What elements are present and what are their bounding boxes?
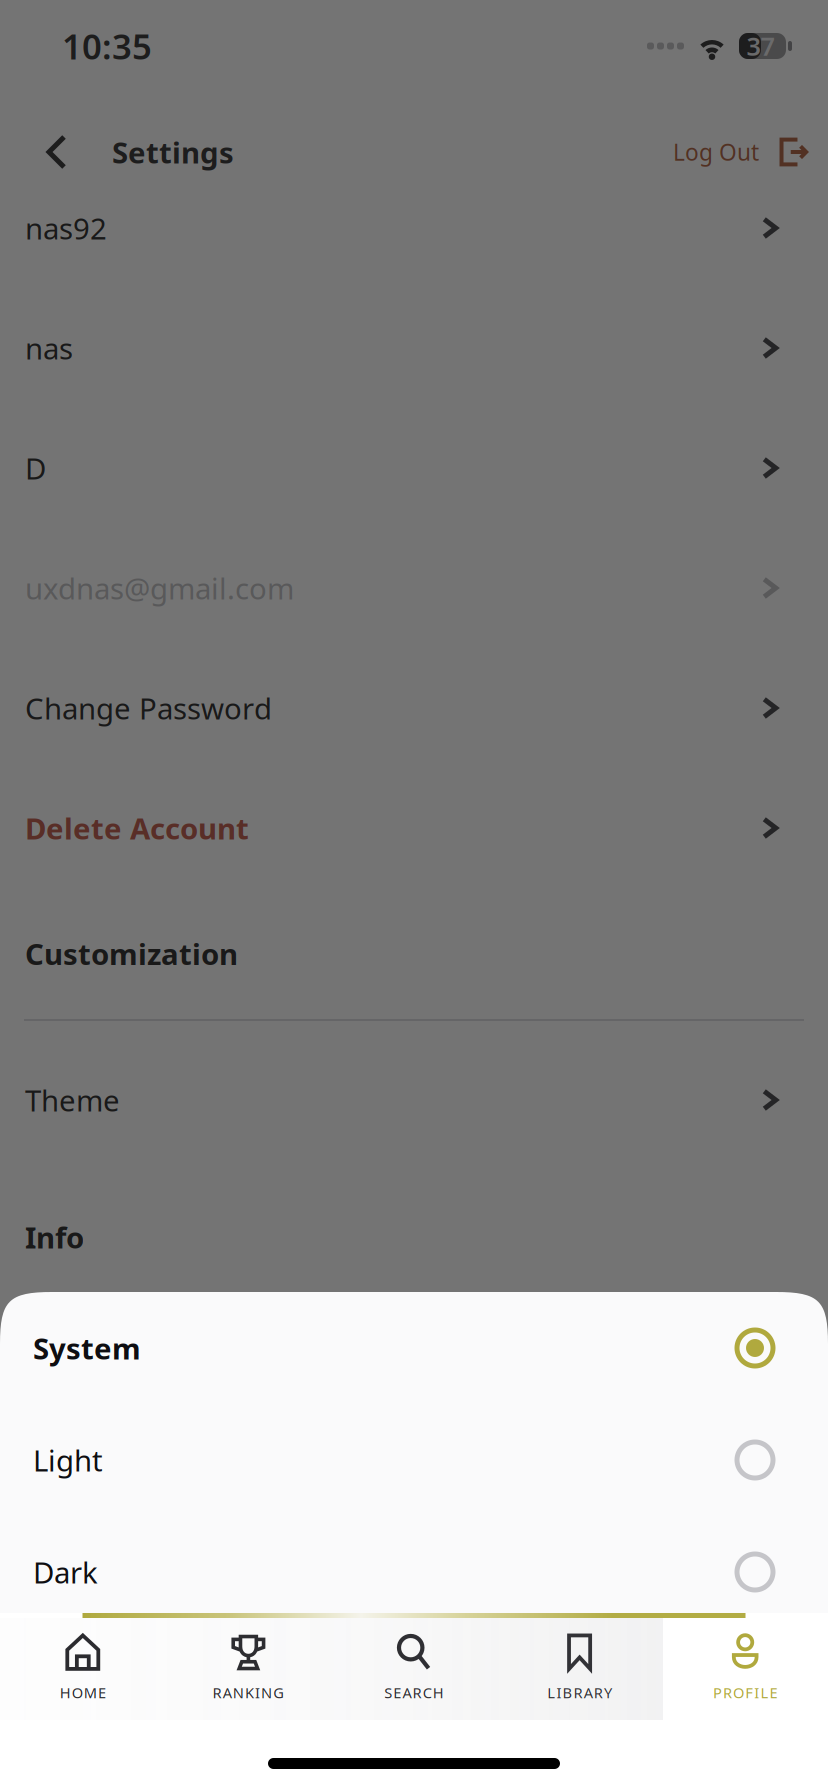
button[interactable]: nas [0,288,828,408]
staticText: 37 [746,29,774,63]
staticText: 10:35 [62,23,152,69]
button[interactable]: Log Out [673,137,807,167]
button[interactable]: SEARCH [331,1634,497,1699]
button[interactable]: HOME [0,1634,166,1699]
staticText: Delete Account [25,808,249,847]
button[interactable]: System [0,1292,828,1404]
staticText: Customization [25,934,238,973]
staticText: PROFILE [713,1683,777,1702]
staticText: D [25,448,46,487]
button[interactable]: D [0,408,828,528]
staticText: Change Password [25,688,272,727]
button[interactable]: Delete Account [0,768,828,888]
button[interactable]: Dark [0,1516,828,1628]
staticText: LIBRARY [547,1683,612,1702]
staticText: uxdnas@gmail.com [25,568,294,607]
staticText: Light [33,1440,103,1479]
button[interactable]: Change Password [0,648,828,768]
button[interactable]: Theme [0,1040,828,1160]
button[interactable]: nas92 [0,168,828,288]
staticText: Settings [112,132,234,171]
staticText: Info [25,1217,84,1256]
staticText: System [33,1328,141,1367]
staticText: Dark [33,1552,98,1591]
staticText: RANKING [213,1683,284,1702]
staticText: HOME [60,1683,106,1702]
button[interactable]: Light [0,1404,828,1516]
staticText: Theme [25,1080,120,1119]
button[interactable]: PROFILE [662,1634,828,1699]
staticText: nas92 [25,208,107,247]
button[interactable]: LIBRARY [497,1634,662,1699]
button[interactable]: RANKING [166,1634,331,1699]
staticText: SEARCH [384,1683,444,1702]
button[interactable]: Back [31,115,82,189]
button[interactable]: uxdnas@gmail.com [0,528,828,648]
staticText: Log Out [673,137,759,167]
staticText: nas [25,328,73,367]
